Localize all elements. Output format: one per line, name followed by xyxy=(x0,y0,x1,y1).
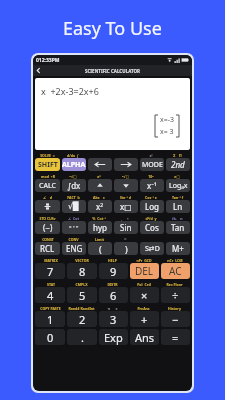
staticText: RCL xyxy=(40,243,55,254)
button[interactable]: ° ' " xyxy=(62,221,86,234)
button[interactable]: ) xyxy=(114,242,138,255)
button[interactable]: (−) xyxy=(35,221,60,234)
button[interactable]: 8 xyxy=(67,263,97,279)
button[interactable]: Sin xyxy=(114,221,138,234)
button[interactable]: RCL xyxy=(35,242,60,255)
button[interactable]: 7 xyxy=(35,263,65,279)
staticText: 0 xyxy=(47,330,54,345)
button[interactable]: √▉ xyxy=(62,200,86,213)
staticText: 9 xyxy=(110,264,117,279)
button[interactable]: Cos xyxy=(140,221,164,234)
staticText: S⇄D xyxy=(145,244,160,254)
button[interactable]: 1 xyxy=(35,311,65,327)
staticText: x² xyxy=(96,201,104,212)
button[interactable]: . xyxy=(67,329,97,345)
button[interactable]: Tan xyxy=(166,221,190,234)
staticText: Rec Floor xyxy=(166,282,183,287)
button[interactable]: AC xyxy=(161,263,190,279)
button[interactable]: Left xyxy=(88,158,112,171)
staticText: + xyxy=(141,312,148,327)
staticText: x! xyxy=(149,153,153,158)
button[interactable]: + xyxy=(130,311,159,327)
button[interactable]: Back xyxy=(33,65,44,76)
staticText: Sin xyxy=(120,222,132,233)
staticText: (−) xyxy=(43,222,53,233)
staticText: Pol Ceil xyxy=(137,282,151,287)
staticText: 4 xyxy=(47,288,54,303)
staticText: Tan xyxy=(171,222,185,233)
button[interactable]: M+ xyxy=(166,242,190,255)
staticText: SCIENTIFIC CALCULATOR xyxy=(85,68,140,74)
staticText: ∫dx xyxy=(67,180,81,191)
staticText: x³ xyxy=(97,174,101,179)
staticText: DISTR xyxy=(107,282,118,287)
button[interactable]: = xyxy=(161,329,190,345)
button[interactable]: − xyxy=(161,311,190,327)
staticText: COPY PASTE xyxy=(40,306,61,311)
button[interactable]: Ans xyxy=(130,329,159,345)
button[interactable]: Down xyxy=(114,179,138,192)
staticText: , × xyxy=(121,216,129,221)
staticText: Limit xyxy=(95,237,104,242)
staticText: Cos xyxy=(145,222,159,233)
button[interactable]: x□ xyxy=(114,200,138,213)
button[interactable]: hyp xyxy=(88,221,112,234)
button[interactable]: Logₐx xyxy=(166,179,190,192)
button[interactable]: 6 xyxy=(99,287,128,303)
staticText: FACT b xyxy=(67,195,80,200)
staticText: 10ˣ xyxy=(148,174,154,179)
staticText: 012:33PM xyxy=(36,57,60,64)
staticText: 1 xyxy=(47,312,54,327)
button[interactable]: × xyxy=(130,287,159,303)
button[interactable]: SHIFT xyxy=(35,158,60,171)
staticText: ( xyxy=(99,243,102,255)
staticText: Sin⁻¹ d xyxy=(120,195,131,200)
button[interactable]: ENG xyxy=(62,242,86,255)
staticText: ∠ Cot xyxy=(68,216,79,221)
button[interactable]: 0 xyxy=(35,329,65,345)
staticText: ∠ d xyxy=(43,195,52,200)
button[interactable]: S⇄D xyxy=(140,242,164,255)
button[interactable]: 9 xyxy=(99,263,128,279)
staticText: mod ÷R xyxy=(41,174,55,179)
staticText: 6 xyxy=(110,288,117,303)
button[interactable]: ∫dx xyxy=(62,179,86,192)
staticText: 7 xyxy=(47,264,54,279)
staticText: x= 3 xyxy=(160,127,174,137)
button[interactable]: DEL xyxy=(130,263,159,279)
staticText: MATRIX xyxy=(44,258,58,263)
button[interactable]: x² xyxy=(88,200,112,213)
staticText: nCr LCM xyxy=(167,258,183,263)
staticText: π e xyxy=(107,306,118,311)
staticText: ÷ xyxy=(172,288,179,303)
button[interactable]: CALC xyxy=(35,179,60,192)
button[interactable]: 3 xyxy=(99,311,128,327)
button[interactable]: Ln xyxy=(166,200,190,213)
button[interactable]: Exp xyxy=(99,329,128,345)
staticText: SHIFT xyxy=(38,160,58,170)
staticText: Rand# RandInt xyxy=(68,306,95,311)
button[interactable]: 2nd xyxy=(166,158,190,171)
staticText: CONV xyxy=(68,237,79,242)
button[interactable]: Log xyxy=(140,200,164,213)
staticText: % Cot⁻¹ xyxy=(92,216,106,221)
button[interactable]: Right xyxy=(114,158,138,171)
staticText: Ans xyxy=(135,330,155,345)
staticText: CONST xyxy=(42,237,54,242)
button[interactable]: MODE xyxy=(140,158,164,171)
button[interactable]: ( xyxy=(88,242,112,255)
staticText: hyp xyxy=(93,222,107,233)
staticText: ALPHA xyxy=(62,160,86,170)
button[interactable]: 5 xyxy=(67,287,97,303)
staticText: ) xyxy=(125,243,128,255)
staticText: d/dx ∫ xyxy=(67,153,79,158)
button[interactable]: ÷ xyxy=(161,287,190,303)
button[interactable]: 4 xyxy=(35,287,65,303)
button[interactable]: 2 xyxy=(67,311,97,327)
button[interactable]: Up xyxy=(88,179,112,192)
button[interactable]: x⁻¹ xyxy=(140,179,164,192)
staticText: DEL xyxy=(135,264,154,278)
button[interactable]: Fraction xyxy=(35,200,60,213)
button[interactable]: ALPHA xyxy=(62,158,86,171)
staticText: ˣ√□ xyxy=(122,174,129,179)
